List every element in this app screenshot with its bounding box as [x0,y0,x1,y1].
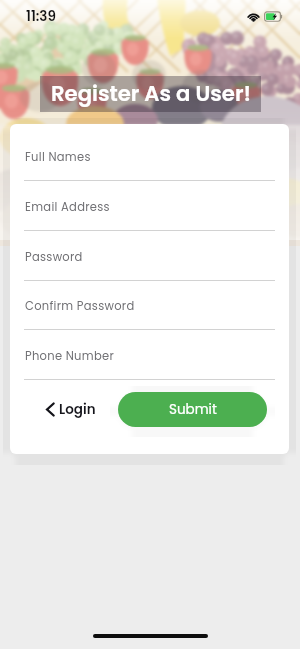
other: Battery charging [264,11,282,22]
button[interactable]: Email Address [10,199,289,230]
staticText: Confirm Password [25,298,135,314]
button[interactable]: Confirm Password [10,298,289,329]
staticText: Full Names [25,149,91,165]
staticText: 11:39 [26,7,56,26]
button[interactable]: Phone Number [10,348,289,379]
staticText: Register As a User! [51,79,251,109]
staticText: Email Address [25,199,110,215]
other: Wi-Fi [248,11,259,22]
button[interactable]: Full Names [10,149,289,180]
button[interactable]: Password [10,249,289,280]
staticText: Login [59,400,96,419]
button[interactable]: Login [40,391,102,427]
staticText: Password [25,249,83,265]
button[interactable]: Submit [118,392,267,427]
staticText: Submit [169,400,217,419]
staticText: Phone Number [25,348,115,364]
